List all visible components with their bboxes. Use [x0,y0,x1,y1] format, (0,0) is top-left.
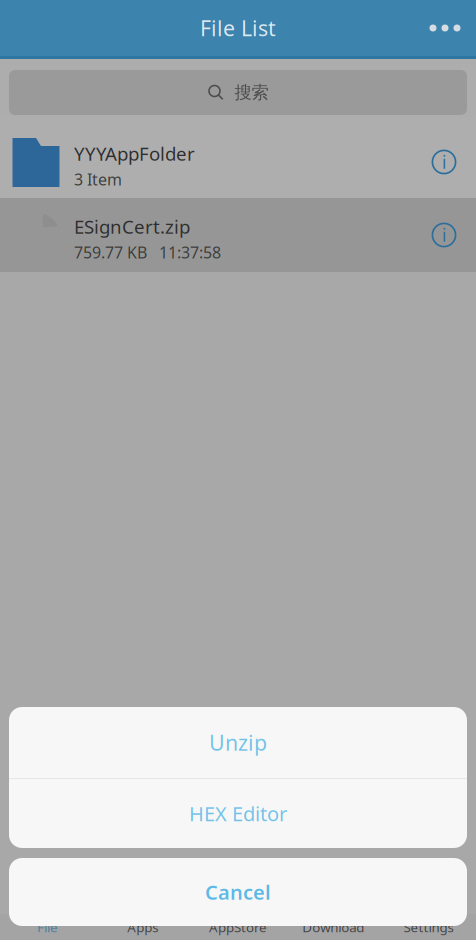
staticText: 搜索 [234,82,268,103]
button[interactable]: ESignCert.zip [0,198,476,272]
staticText: Unzip [209,728,267,757]
button[interactable]: Download [286,914,381,940]
staticText: HEX Editor [189,800,287,827]
button[interactable]: AppStore [190,914,286,940]
staticText: File [37,918,58,936]
staticText: Cancel [205,879,271,905]
staticText: YYYAppFolder [74,141,195,166]
staticText: i [442,223,446,246]
button[interactable]: Settings [381,914,476,940]
staticText: Settings [403,918,453,936]
button[interactable]: Unzip [9,707,467,778]
staticText: Apps [127,918,158,936]
staticText: i [442,150,446,173]
staticText: 759.77 KB 11:37:58 [74,242,221,263]
staticText: 3 Item [74,169,122,190]
button[interactable]: YYYAppFolder [0,117,476,198]
staticText: ESignCert.zip [74,214,190,239]
button[interactable]: Apps [95,914,190,940]
button[interactable]: Cancel [9,858,467,926]
staticText: Download [302,918,364,936]
button[interactable]: File [0,914,95,940]
button[interactable]: More options [414,6,476,50]
staticText: File List [200,14,276,42]
button[interactable]: HEX Editor [9,779,467,848]
button[interactable]: 搜索 [9,70,467,115]
staticText: AppStore [209,918,267,936]
